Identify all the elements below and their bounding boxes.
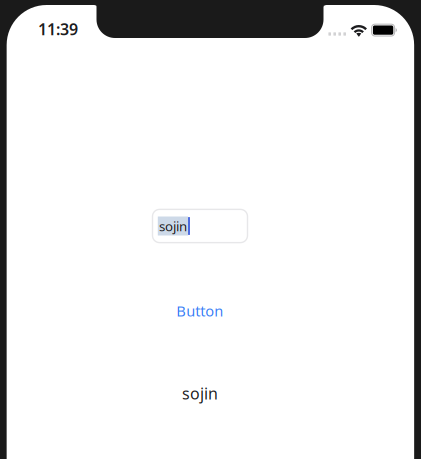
button[interactable]: Button <box>170 300 230 322</box>
button[interactable]: Name text field <box>152 209 247 243</box>
staticText: 11:39 <box>38 18 78 40</box>
staticText: Button <box>176 301 223 321</box>
staticText: sojin <box>182 383 218 404</box>
staticText: sojin <box>159 217 187 235</box>
